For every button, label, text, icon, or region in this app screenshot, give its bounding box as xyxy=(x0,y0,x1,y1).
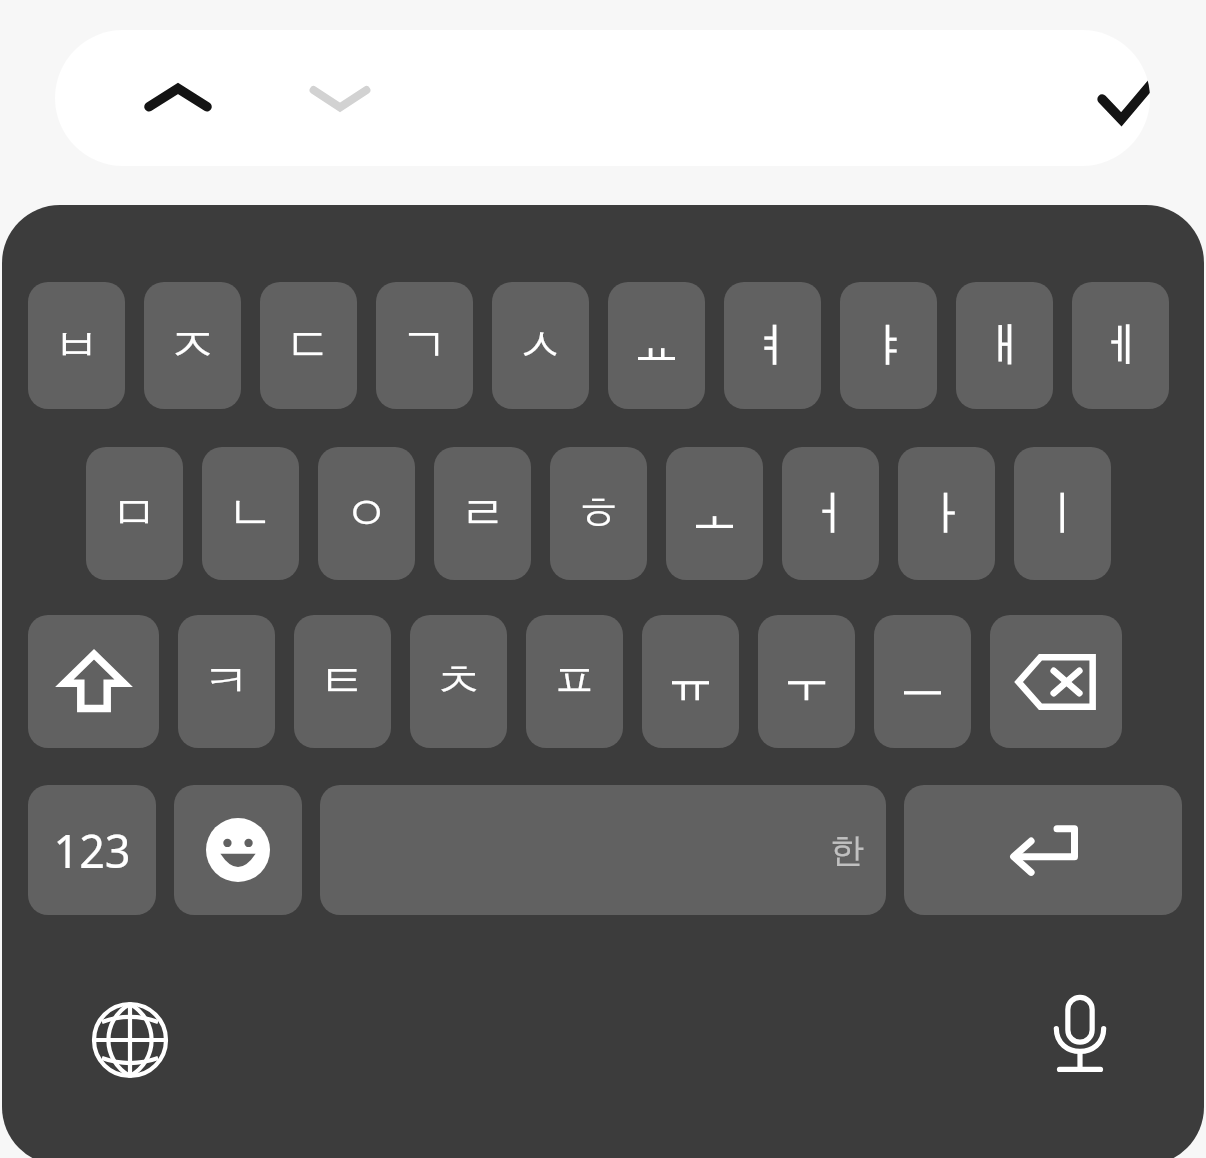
button[interactable]: ㅅ xyxy=(492,282,589,409)
staticText: ㅈ xyxy=(169,316,216,375)
button[interactable]: ㅠ xyxy=(642,615,739,748)
staticText: ㅅ xyxy=(517,316,564,375)
staticText: ㅌ xyxy=(319,652,366,711)
button[interactable]: Previous xyxy=(123,58,233,138)
button[interactable]: ㄷ xyxy=(260,282,357,409)
button[interactable]: Enter xyxy=(904,785,1182,915)
button[interactable]: ㅈ xyxy=(144,282,241,409)
button[interactable]: ㅔ xyxy=(1072,282,1169,409)
button[interactable]: ㅗ xyxy=(666,447,763,580)
staticText: ㅊ xyxy=(435,652,482,711)
button[interactable]: ㅛ xyxy=(608,282,705,409)
staticText: ㄴ xyxy=(227,484,274,543)
staticText: ㅛ xyxy=(633,316,680,375)
button[interactable]: Voice input xyxy=(1030,985,1130,1085)
button[interactable]: 123 xyxy=(28,785,156,915)
button[interactable]: ㅌ xyxy=(294,615,391,748)
staticText: ㄹ xyxy=(459,484,506,543)
staticText: ㅂ xyxy=(53,316,100,375)
staticText: ㅇ xyxy=(343,484,390,543)
button[interactable]: ㅇ xyxy=(318,447,415,580)
button[interactable]: ㅁ xyxy=(86,447,183,580)
staticText: 123 xyxy=(53,820,131,881)
button[interactable]: Change keyboard language xyxy=(80,990,180,1090)
button[interactable]: ㅣ xyxy=(1014,447,1111,580)
button[interactable]: ㅓ xyxy=(782,447,879,580)
staticText: ㅡ xyxy=(899,652,946,711)
staticText: ㅓ xyxy=(807,484,854,543)
button[interactable]: Shift xyxy=(28,615,159,748)
staticText: ㅎ xyxy=(575,484,622,543)
button[interactable]: ㅍ xyxy=(526,615,623,748)
staticText: ㅜ xyxy=(783,652,830,711)
button[interactable]: Next xyxy=(285,58,395,138)
staticText: ㅔ xyxy=(1097,316,1144,375)
button[interactable]: Emoji xyxy=(174,785,302,915)
staticText: ㅑ xyxy=(865,316,912,375)
staticText: ㅠ xyxy=(667,652,714,711)
button[interactable]: ㅊ xyxy=(410,615,507,748)
button[interactable]: ㄱ xyxy=(376,282,473,409)
button[interactable]: ㄴ xyxy=(202,447,299,580)
staticText: ㅍ xyxy=(551,652,598,711)
staticText: ㄱ xyxy=(401,316,448,375)
staticText: ㄷ xyxy=(285,316,332,375)
staticText: ㅣ xyxy=(1039,484,1086,543)
button[interactable]: ㅂ xyxy=(28,282,125,409)
button[interactable]: ㅐ xyxy=(956,282,1053,409)
button[interactable]: ㅑ xyxy=(840,282,937,409)
button[interactable]: ㄹ xyxy=(434,447,531,580)
staticText: ㅗ xyxy=(691,484,738,543)
staticText: ㅁ xyxy=(111,484,158,543)
staticText: 한 xyxy=(830,829,864,872)
staticText: ㅕ xyxy=(749,316,796,375)
button[interactable]: ㅋ xyxy=(178,615,275,748)
staticText: ㅋ xyxy=(203,652,250,711)
button[interactable]: Space xyxy=(320,785,886,915)
button[interactable]: ㅎ xyxy=(550,447,647,580)
button[interactable]: Done xyxy=(1075,54,1150,142)
button[interactable]: Backspace xyxy=(990,615,1122,748)
staticText: ㅏ xyxy=(923,484,970,543)
button[interactable]: ㅜ xyxy=(758,615,855,748)
staticText: ㅐ xyxy=(981,316,1028,375)
button[interactable]: ㅏ xyxy=(898,447,995,580)
button[interactable]: ㅕ xyxy=(724,282,821,409)
button[interactable]: ㅡ xyxy=(874,615,971,748)
